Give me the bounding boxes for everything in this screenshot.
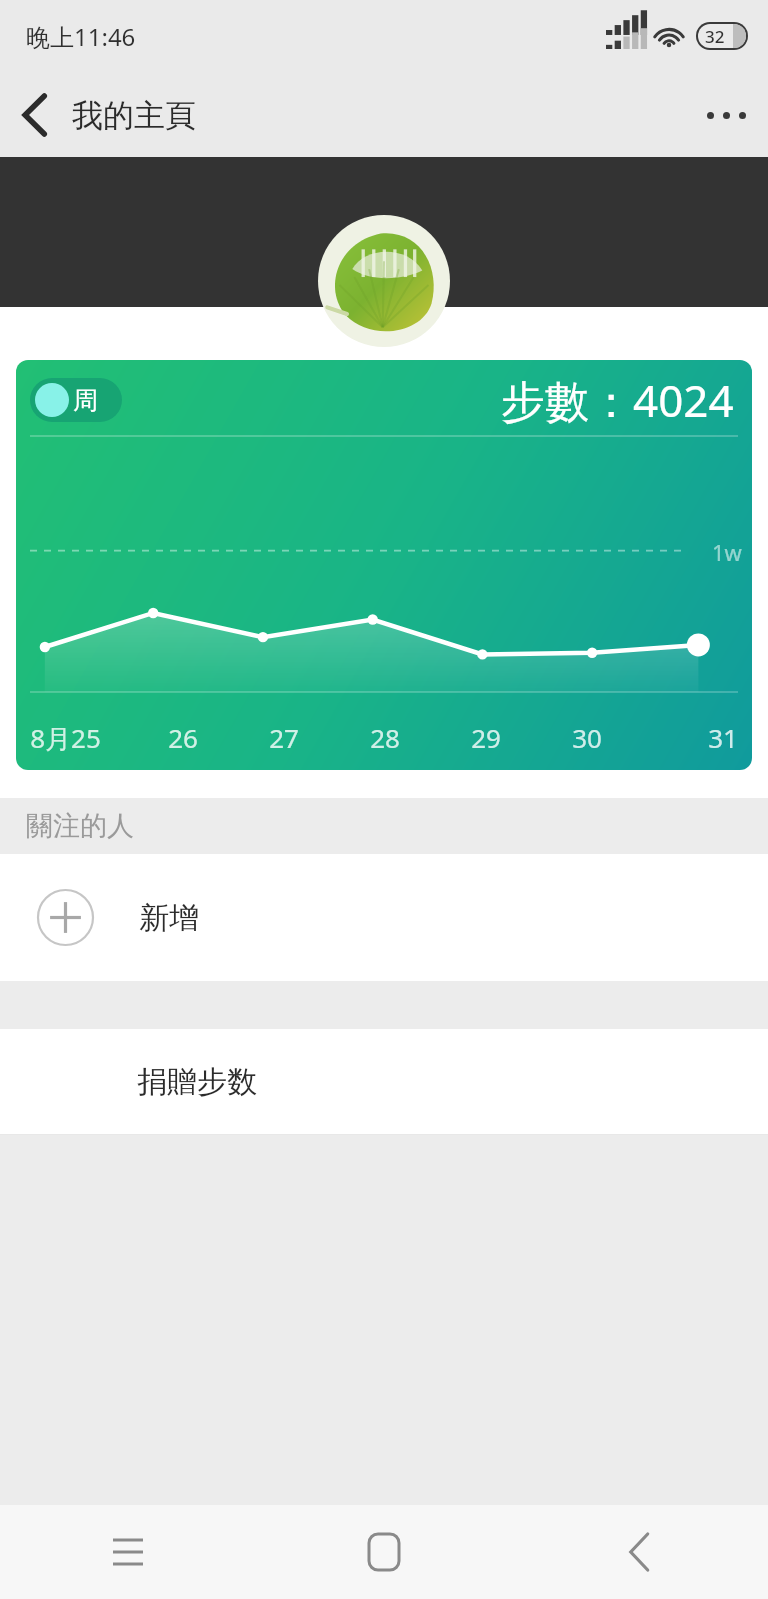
button[interactable]: Profile photo [302, 215, 466, 347]
button[interactable]: 新增 [0, 854, 768, 981]
button[interactable]: Home [256, 1505, 512, 1599]
staticText: 31 [708, 720, 738, 755]
staticText: 捐贈步数 [137, 1063, 257, 1101]
button[interactable]: 周 [30, 378, 122, 422]
button[interactable]: Back [512, 1505, 768, 1599]
staticText: 周 [73, 385, 98, 416]
staticText: 1w [712, 537, 742, 567]
staticText: 26 [168, 720, 198, 755]
staticText: 28 [370, 720, 400, 755]
button[interactable]: 捐贈步数 [0, 1029, 768, 1134]
button[interactable]: Back [0, 79, 72, 151]
staticText: 晚上11:46 [26, 20, 136, 53]
staticText: 27 [269, 720, 299, 755]
staticText: 8月25 [30, 720, 101, 756]
staticText: 我的主頁 [72, 96, 196, 135]
button[interactable]: Recent apps [0, 1505, 256, 1599]
staticText: 步數：4024 [501, 370, 734, 430]
button[interactable]: More options [684, 73, 768, 157]
staticText: 30 [572, 720, 602, 755]
staticText: 關注的人 [26, 809, 134, 843]
staticText: 32 [705, 25, 725, 48]
staticText: 新增 [139, 899, 199, 937]
staticText: 29 [471, 720, 501, 755]
button[interactable]: 周 [16, 360, 752, 770]
